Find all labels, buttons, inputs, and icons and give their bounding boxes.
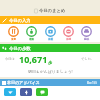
button[interactable]: Facebook [20, 88, 32, 96]
button[interactable]: 運動 [26, 26, 37, 40]
button[interactable]: 今日の入力 [0, 16, 100, 24]
staticText: 本日のアドバイス [7, 80, 40, 85]
staticText: 今日のまとめ [39, 8, 66, 13]
staticText: 今日は [5, 57, 15, 61]
staticText: 10,671 [19, 53, 48, 65]
button[interactable]: LINE [36, 88, 48, 96]
button[interactable]: 睡眠 [81, 26, 92, 40]
button[interactable]: 今日の歩数 [0, 44, 100, 52]
staticText: 体重 [48, 37, 54, 40]
button[interactable]: Twitter [4, 88, 16, 96]
staticText: 運動 [29, 37, 35, 40]
staticText: 食事 [11, 37, 17, 40]
button[interactable]: 体調 [63, 26, 74, 40]
staticText: 睡眠 [84, 37, 90, 40]
staticText: でした。 [81, 57, 95, 61]
staticText: 8月1日 [87, 81, 98, 85]
button[interactable]: 本日のアドバイス [0, 79, 100, 86]
button[interactable]: 体重 [45, 26, 56, 40]
staticText: 歩 [48, 60, 52, 65]
staticText: 体調 [66, 37, 72, 40]
staticText: 今日の入力 [9, 18, 31, 23]
button[interactable]: 食事 [8, 26, 19, 40]
staticText: 明日もがんばりましょう! [28, 69, 73, 74]
staticText: 今日の歩数 [9, 46, 31, 51]
